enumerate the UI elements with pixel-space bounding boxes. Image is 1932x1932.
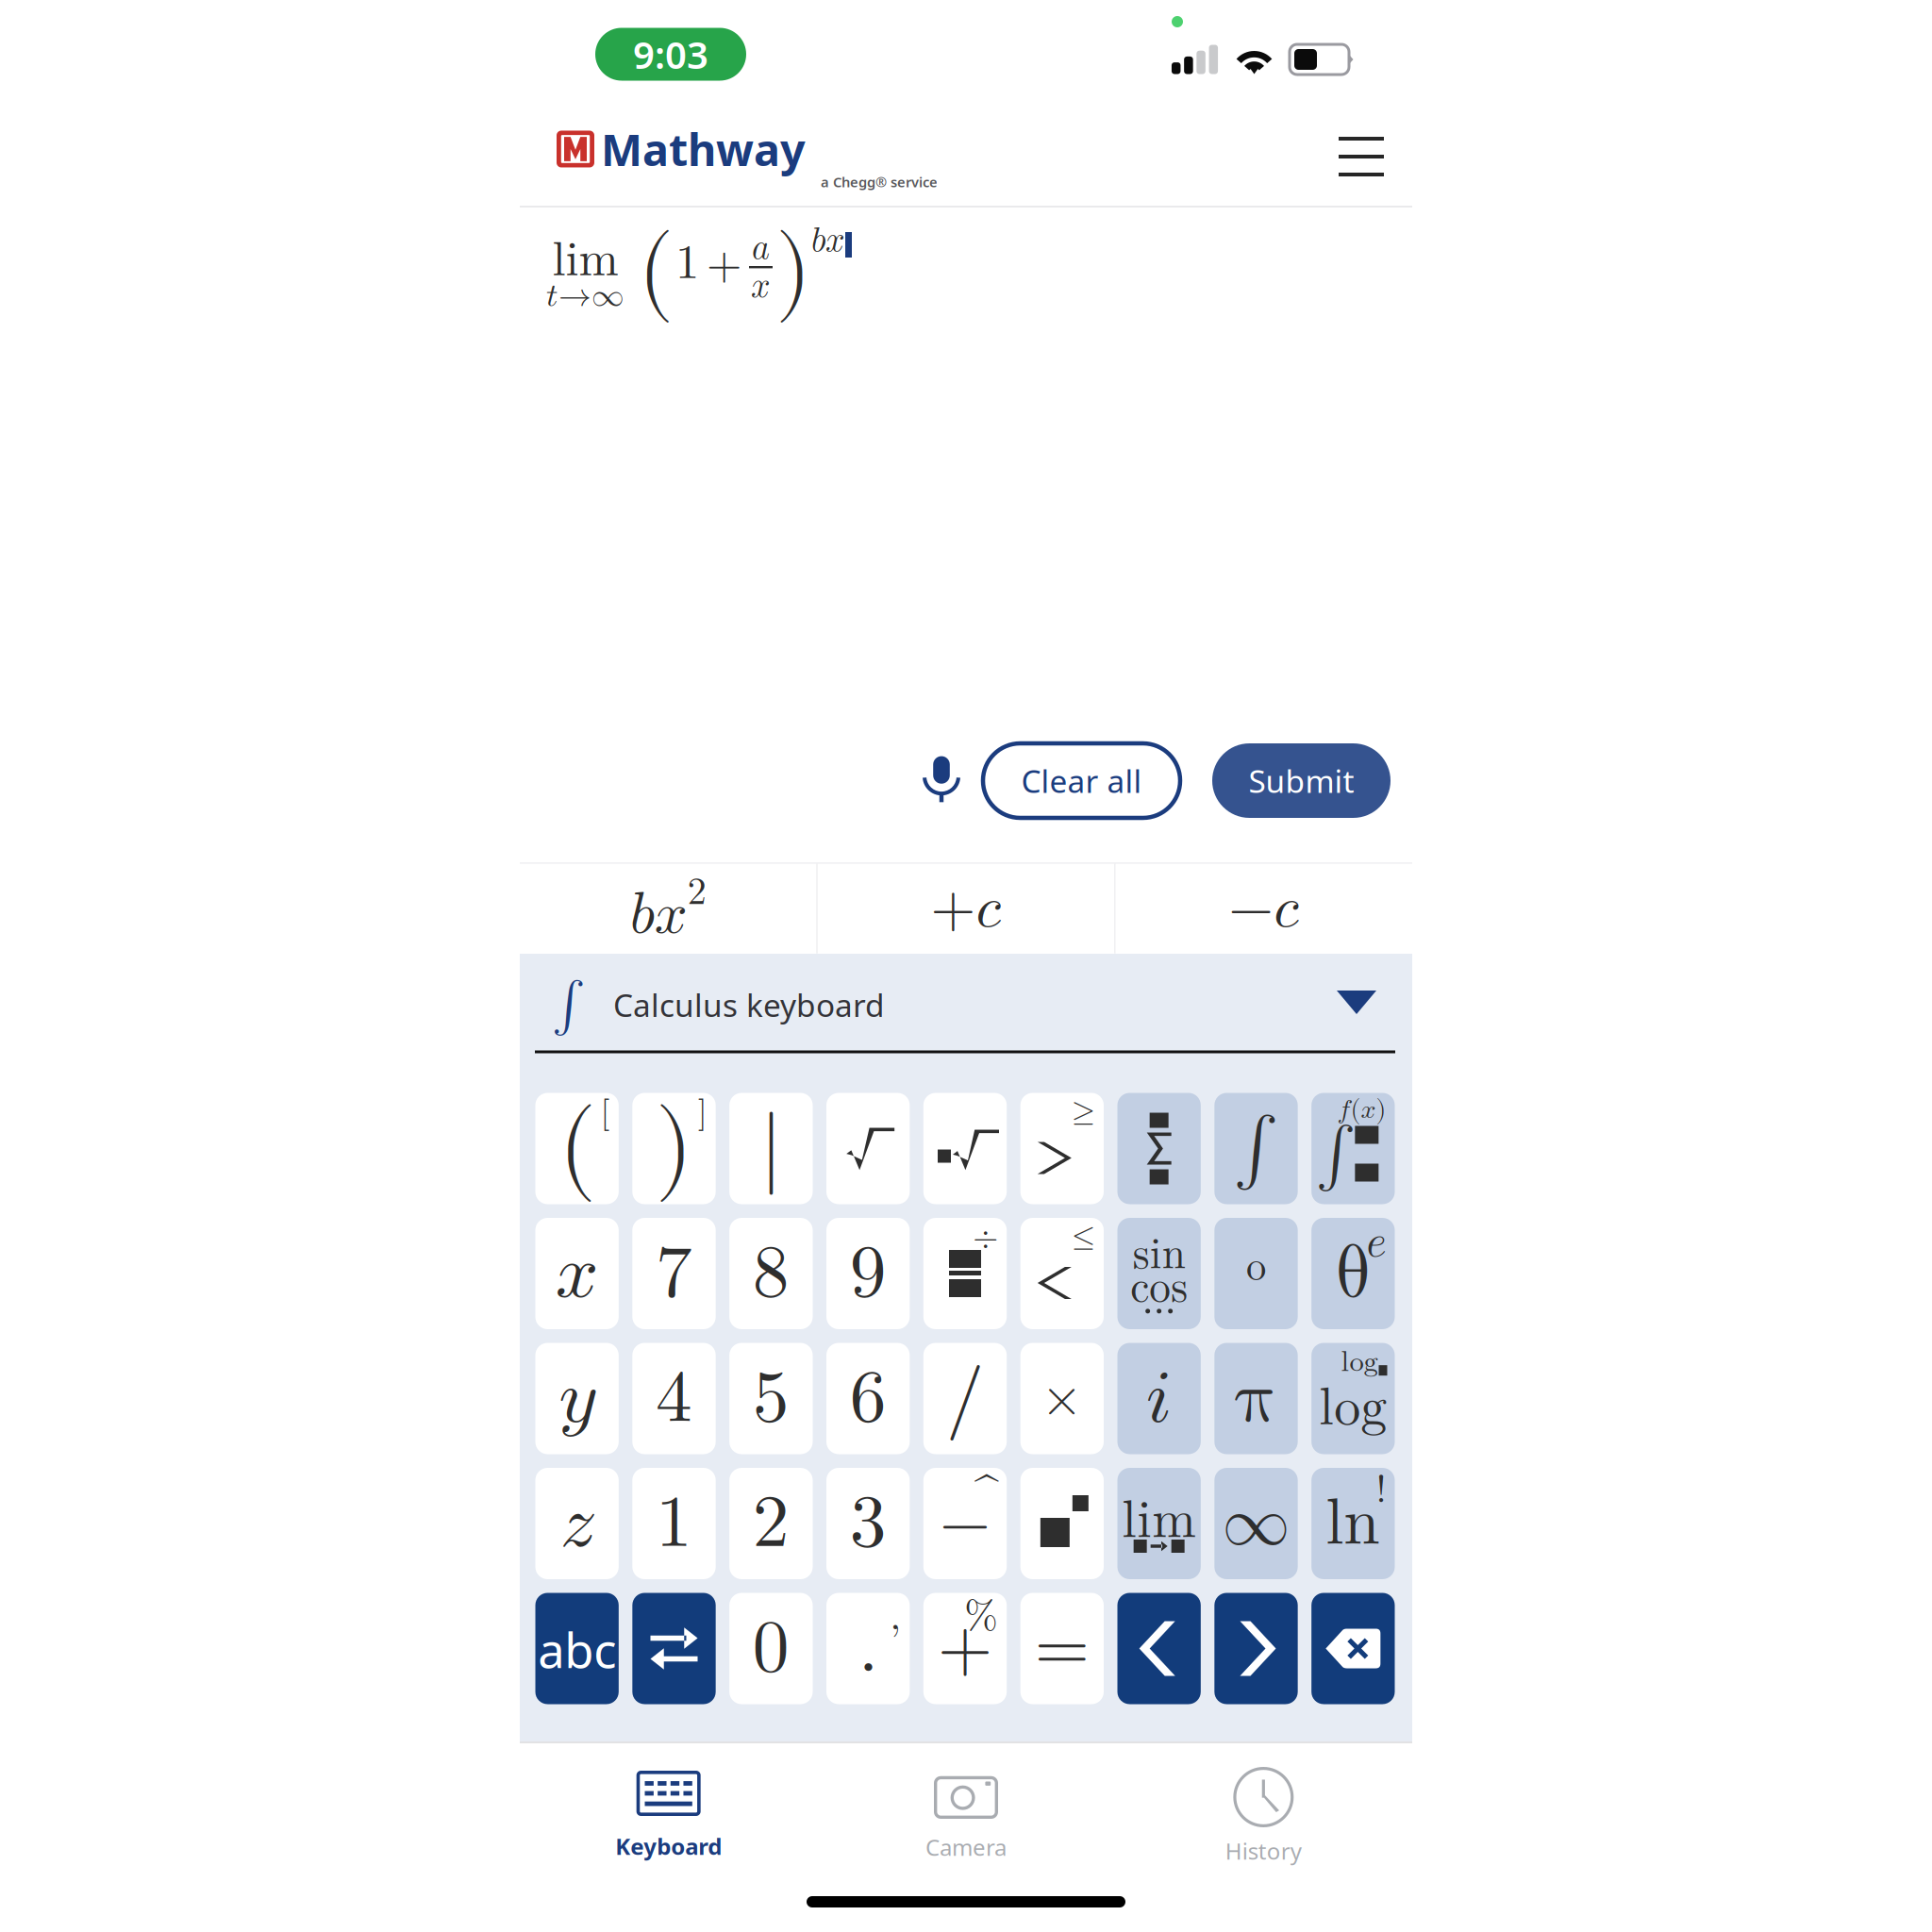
button[interactable]: ( <box>535 1093 619 1204</box>
staticText: − <box>940 1491 991 1556</box>
button[interactable]: move left <box>1117 1593 1201 1704</box>
staticText: log <box>1341 1348 1378 1377</box>
button[interactable]: 0 <box>729 1593 813 1704</box>
staticText: ∫ <box>552 980 585 1030</box>
button[interactable]: 8 <box>729 1218 813 1329</box>
button[interactable]: abc <box>535 1593 619 1704</box>
button[interactable]: key <box>1020 1093 1104 1204</box>
button[interactable]: trigonometric functions <box>1117 1218 1201 1329</box>
button[interactable]: 𝑦 <box>535 1343 619 1454</box>
staticText: 𝑡→∞ <box>546 280 625 313</box>
button[interactable]: o <box>1214 1218 1298 1329</box>
button[interactable]: 7 <box>632 1218 716 1329</box>
staticText: π <box>1235 1362 1277 1435</box>
staticText: ∫ <box>1233 1115 1279 1183</box>
staticText: × <box>1041 1372 1083 1425</box>
staticText: 9 <box>850 1237 886 1310</box>
button[interactable]: ) <box>632 1093 716 1204</box>
staticText: θ <box>1335 1236 1371 1311</box>
button[interactable]: exponent <box>1020 1468 1104 1579</box>
button[interactable]: Submit <box>1212 743 1391 818</box>
button[interactable]: logarithm <box>1311 1343 1395 1454</box>
button[interactable]: definite integral <box>1311 1093 1395 1204</box>
button[interactable]: 𝑧 <box>535 1468 619 1579</box>
button[interactable]: +𝑐 <box>818 864 1114 954</box>
button[interactable]: ln <box>1311 1468 1395 1579</box>
staticText: 2 <box>687 874 706 911</box>
staticText: 𝑎 <box>752 231 770 265</box>
button[interactable]: key <box>1020 1218 1104 1329</box>
staticText: Calculus keyboard <box>613 984 885 1026</box>
staticText: lim <box>552 237 618 285</box>
staticText: 0 <box>753 1612 789 1685</box>
staticText: cos <box>1130 1267 1188 1310</box>
staticText: ( <box>558 1099 596 1197</box>
button[interactable]: 1 <box>632 1468 716 1579</box>
button[interactable]: History <box>1115 1766 1412 1866</box>
staticText: 9:03 <box>633 29 708 79</box>
button[interactable]: θ <box>1311 1218 1395 1329</box>
button[interactable]: π <box>1214 1343 1298 1454</box>
staticText: ! <box>1376 1472 1386 1509</box>
staticText: 6 <box>850 1362 886 1435</box>
button[interactable]: + <box>923 1593 1007 1704</box>
staticText: ln <box>1326 1491 1380 1556</box>
button[interactable]: −𝑐 <box>1116 864 1412 954</box>
button[interactable]: 4 <box>632 1343 716 1454</box>
staticText: −𝑐 <box>1229 880 1299 938</box>
staticText: ∞ <box>1222 1490 1290 1557</box>
button[interactable]: summation <box>1117 1093 1201 1204</box>
button[interactable]: delete <box>1311 1593 1395 1704</box>
staticText: 1 <box>675 240 699 287</box>
staticText: % <box>964 1597 998 1637</box>
staticText: Submit <box>1249 760 1354 802</box>
button[interactable]: 𝑥 <box>535 1218 619 1329</box>
button[interactable]: Keyboard <box>520 1771 817 1861</box>
button[interactable]: Voice input <box>923 755 960 806</box>
button[interactable]: 6 <box>826 1343 910 1454</box>
staticText: 𝑓(𝑥) <box>1337 1097 1386 1123</box>
staticText: 1 <box>656 1487 692 1560</box>
button[interactable]: 2 <box>729 1468 813 1579</box>
staticText: lim <box>1122 1494 1196 1547</box>
button[interactable]: move right <box>1214 1593 1298 1704</box>
staticText: 𝑦 <box>559 1361 595 1436</box>
button[interactable]: switch <box>632 1593 716 1704</box>
button[interactable]: fraction <box>923 1218 1007 1329</box>
button[interactable]: Camera <box>817 1770 1115 1862</box>
staticText: 2 <box>753 1487 789 1560</box>
button[interactable]: | <box>729 1093 813 1204</box>
staticText: Clear all <box>1021 760 1142 802</box>
staticText: Camera <box>925 1832 1007 1862</box>
staticText: + <box>707 242 741 288</box>
staticText: [ <box>601 1097 610 1129</box>
staticText: ÷ <box>973 1222 998 1254</box>
button[interactable]: nth root <box>923 1093 1007 1204</box>
staticText: 3 <box>850 1487 886 1560</box>
button[interactable]: Menu <box>1319 108 1404 206</box>
button[interactable]: = <box>1020 1593 1104 1704</box>
staticText: ≤ <box>1072 1222 1095 1252</box>
button[interactable]: 5 <box>729 1343 813 1454</box>
button[interactable]: ∫ <box>1214 1093 1298 1204</box>
button[interactable]: ∞ <box>1214 1468 1298 1579</box>
button[interactable]: / <box>923 1343 1007 1454</box>
button[interactable]: Clear all <box>983 743 1180 818</box>
button[interactable]: 𝑏𝑥 <box>520 864 816 954</box>
staticText: 7 <box>656 1237 692 1310</box>
button[interactable]: − <box>923 1468 1007 1579</box>
staticText: Mathway <box>601 120 806 178</box>
staticText: | <box>760 1107 782 1190</box>
button[interactable]: limit <box>1117 1468 1201 1579</box>
button[interactable]: × <box>1020 1343 1104 1454</box>
button[interactable]: 3 <box>826 1468 910 1579</box>
button[interactable]: 𝑖 <box>1117 1343 1201 1454</box>
staticText: o <box>1246 1247 1266 1287</box>
staticText: sin <box>1133 1234 1186 1276</box>
staticText: abc <box>538 1618 616 1681</box>
staticText: ( <box>638 225 674 318</box>
button[interactable]: square root <box>826 1093 910 1204</box>
staticText: 𝑥 <box>555 1236 599 1311</box>
button[interactable]: . <box>826 1593 910 1704</box>
button[interactable]: 9 <box>826 1218 910 1329</box>
